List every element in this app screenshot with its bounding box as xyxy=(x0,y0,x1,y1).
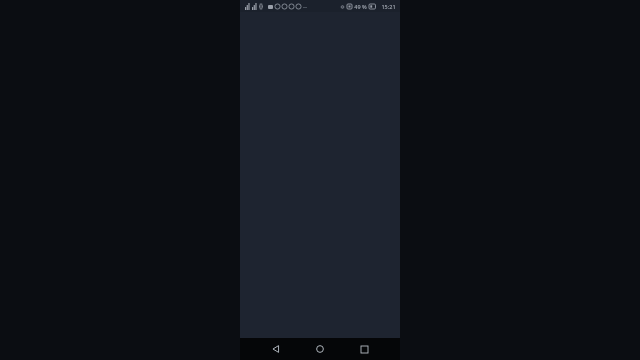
button[interactable]: Home xyxy=(309,338,331,360)
staticText: 15:21 xyxy=(381,3,396,10)
button[interactable]: Back xyxy=(265,338,287,360)
button[interactable]: Recent apps xyxy=(353,338,375,360)
staticText: 49 % xyxy=(354,3,367,10)
